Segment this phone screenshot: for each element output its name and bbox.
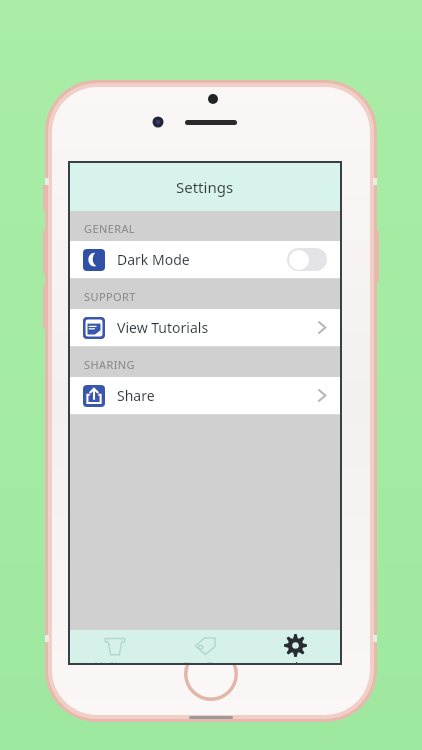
staticText: View Tutorials (117, 318, 209, 337)
button[interactable]: View Tutorials (70, 309, 340, 346)
staticText: Plant Tags (183, 659, 227, 663)
staticText: Share (117, 386, 155, 405)
staticText: SHARING (84, 357, 135, 372)
staticText: Settings (176, 177, 234, 197)
staticText: My Plants (94, 659, 136, 663)
button[interactable]: My Plants (70, 630, 160, 663)
staticText: Dark Mode (117, 250, 190, 269)
staticText: SUPPORT (84, 289, 136, 304)
button[interactable]: Share (70, 377, 340, 414)
button[interactable]: Settings (250, 630, 340, 663)
staticText: GENERAL (84, 221, 136, 236)
staticText: Settings (277, 659, 314, 663)
button[interactable]: Dark Mode toggle (287, 248, 327, 271)
button[interactable]: Dark Mode (70, 241, 340, 278)
button[interactable]: Plant Tags (160, 630, 250, 663)
